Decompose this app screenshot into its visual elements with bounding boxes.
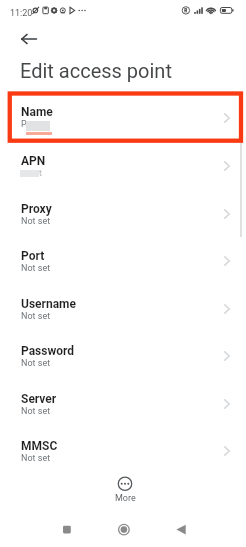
- button[interactable]: Recents: [49, 512, 85, 547]
- button[interactable]: Proxy: [0, 193, 246, 240]
- staticText: Not set: [21, 453, 51, 464]
- staticText: More: [115, 493, 136, 504]
- staticText: Name: [21, 105, 53, 119]
- button[interactable]: More: [108, 475, 142, 504]
- button[interactable]: Port: [0, 240, 246, 287]
- staticText: Not set: [21, 311, 51, 322]
- staticText: Not set: [21, 263, 51, 274]
- staticText: Not set: [21, 406, 51, 417]
- button[interactable]: Server: [0, 383, 246, 430]
- staticText: t: [39, 168, 42, 179]
- staticText: Not set: [21, 216, 51, 227]
- button[interactable]: Back: [163, 512, 199, 547]
- button[interactable]: APN: [0, 145, 246, 192]
- staticText: MMSC: [21, 439, 58, 453]
- button[interactable]: Username: [0, 288, 246, 335]
- staticText: Password: [21, 344, 75, 358]
- button[interactable]: Back: [14, 24, 44, 54]
- staticText: Username: [21, 297, 76, 311]
- button[interactable]: MMSC: [0, 430, 246, 477]
- staticText: APN: [21, 154, 46, 168]
- staticText: P: [21, 119, 27, 130]
- staticText: Not set: [21, 358, 51, 369]
- staticText: 11:20: [10, 8, 33, 19]
- staticText: Server: [21, 392, 57, 406]
- button[interactable]: Name: [7, 91, 244, 143]
- staticText: Proxy: [21, 202, 52, 216]
- button[interactable]: Home: [106, 512, 142, 547]
- staticText: Port: [21, 249, 45, 263]
- button[interactable]: Password: [0, 335, 246, 382]
- staticText: Edit access point: [20, 59, 172, 82]
